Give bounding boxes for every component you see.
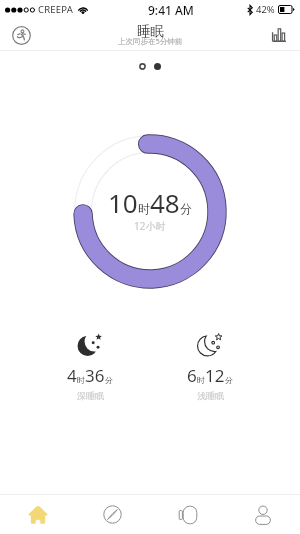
staticText: 分	[225, 375, 233, 385]
staticText: 10	[108, 185, 138, 220]
button[interactable]: 4	[30, 330, 150, 401]
staticText: 浅睡眠	[197, 390, 224, 401]
staticText: 上次同步在5分钟前	[118, 36, 183, 46]
staticText: 48	[150, 185, 180, 220]
staticText: 时	[77, 375, 85, 385]
staticText: 深睡眠	[77, 390, 104, 401]
staticText: 42%	[256, 3, 275, 16]
button[interactable]: Statistics	[265, 21, 293, 49]
staticText: 9:41 AM	[148, 2, 194, 18]
staticText: 12小时	[134, 219, 166, 233]
button[interactable]: Discover	[75, 495, 150, 534]
button[interactable]: Profile	[225, 495, 300, 534]
staticText: 36	[85, 364, 105, 387]
staticText: 睡眠	[137, 23, 164, 40]
staticText: 分	[180, 201, 192, 216]
staticText: 时	[138, 201, 150, 216]
button[interactable]: Device	[150, 495, 225, 534]
button[interactable]: 6	[150, 330, 270, 401]
staticText: CREEPA	[38, 3, 74, 16]
button[interactable]: Activity	[7, 21, 35, 49]
staticText: 6	[187, 364, 197, 387]
staticText: 4	[67, 364, 77, 387]
staticText: 时	[197, 375, 205, 385]
staticText: 分	[105, 375, 113, 385]
staticText: 12	[205, 364, 225, 387]
button[interactable]: Home	[0, 495, 75, 534]
